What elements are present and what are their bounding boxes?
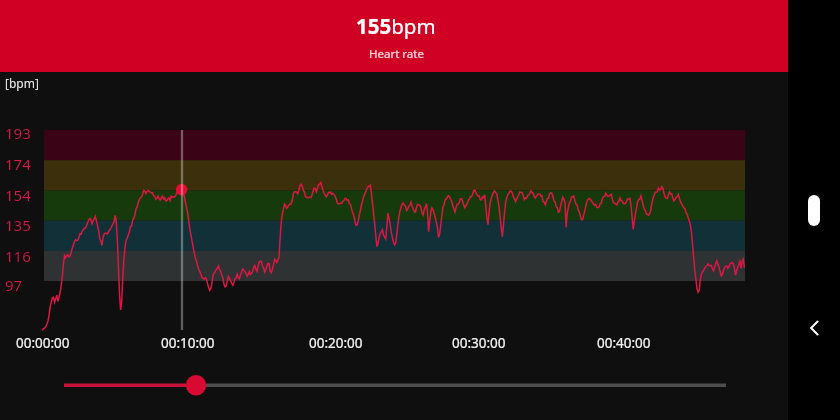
button[interactable]: Back [795, 308, 835, 348]
button[interactable]: Home [808, 195, 820, 226]
staticText: Heart rate [369, 46, 424, 62]
staticText: 116 [5, 246, 31, 266]
staticText: 00:20:00 [309, 334, 363, 352]
button[interactable]: Seek position in workout [0, 357, 788, 413]
staticText: 155bpm [356, 12, 436, 40]
staticText: 00:30:00 [452, 334, 506, 352]
staticText: 193 [5, 123, 31, 143]
staticText: 154 [5, 185, 31, 205]
staticText: 00:10:00 [161, 334, 215, 352]
staticText: 00:00:00 [16, 334, 70, 352]
button[interactable]: 155bpm [0, 0, 788, 72]
staticText: 135 [5, 215, 31, 235]
staticText: 97 [5, 275, 23, 295]
staticText: 00:40:00 [597, 334, 651, 352]
staticText: 174 [5, 154, 31, 174]
staticText: [bpm] [5, 75, 39, 91]
